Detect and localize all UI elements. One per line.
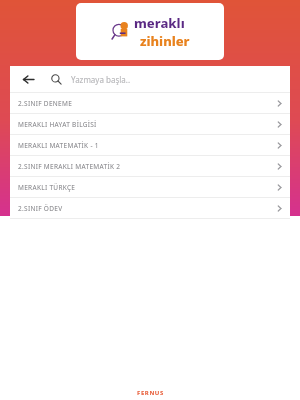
button[interactable]: Back: [18, 69, 38, 89]
button[interactable]: MERAKLI TÜRKÇE: [10, 177, 290, 197]
button[interactable]: meraklı: [76, 3, 224, 60]
staticText: MERAKLI MATEMATİK - 1: [18, 141, 268, 150]
button[interactable]: 2.SINIF ÖDEV: [10, 198, 290, 218]
staticText: MERAKLI TÜRKÇE: [18, 183, 268, 192]
staticText: MERAKLI HAYAT BİLGİSİ: [18, 120, 268, 129]
staticText: 2.SINIF MERAKLI MATEMATİK 2: [18, 162, 268, 171]
staticText: meraklı: [134, 14, 185, 32]
button[interactable]: MERAKLI HAYAT BİLGİSİ: [10, 114, 290, 134]
staticText: 2.SINIF ÖDEV: [18, 204, 268, 213]
staticText: FERNUS: [137, 389, 164, 397]
staticText: zihinler: [140, 32, 190, 50]
staticText: 2.SINIF DENEME: [18, 99, 268, 108]
button[interactable]: MERAKLI MATEMATİK - 1: [10, 135, 290, 155]
button[interactable]: Back: [10, 66, 290, 92]
button[interactable]: 2.SINIF DENEME: [10, 93, 290, 113]
staticText: Yazmaya başla..: [71, 74, 131, 85]
button[interactable]: 2.SINIF MERAKLI MATEMATİK 2: [10, 156, 290, 176]
